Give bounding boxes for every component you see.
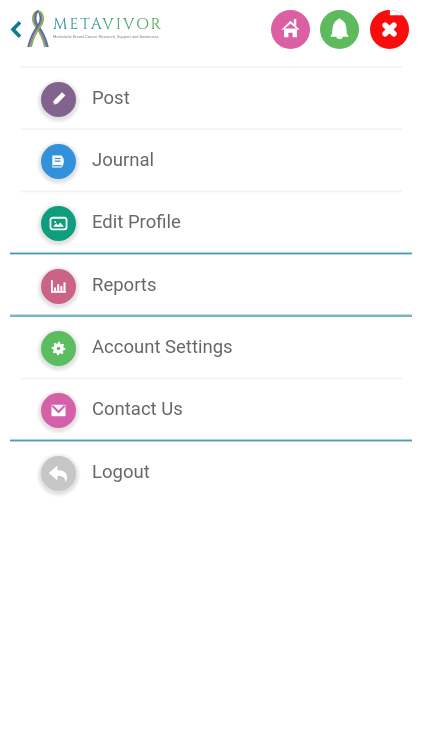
staticText: Account Settings [92,336,233,358]
button[interactable]: Close [370,10,409,49]
button[interactable]: Logout [0,442,422,504]
staticText: Contact Us [92,398,183,420]
staticText: Journal [92,149,155,171]
staticText: Post [92,87,130,109]
button[interactable]: Account Settings [0,317,422,379]
staticText: METAVIVOR [53,14,164,35]
button[interactable]: Edit Profile [0,192,422,254]
button[interactable]: Notifications [320,10,359,49]
button[interactable]: Reports [0,255,422,317]
staticText: Edit Profile [92,211,181,233]
staticText: Logout [92,461,150,483]
button[interactable]: Home [271,10,310,49]
button[interactable]: Journal [0,130,422,192]
button[interactable]: Back [4,14,30,45]
button[interactable]: Post [0,68,422,130]
staticText: Metastatic Breast Cancer Research, Suppo… [53,34,159,38]
button[interactable]: Contact Us [0,379,422,441]
staticText: Reports [92,274,157,296]
